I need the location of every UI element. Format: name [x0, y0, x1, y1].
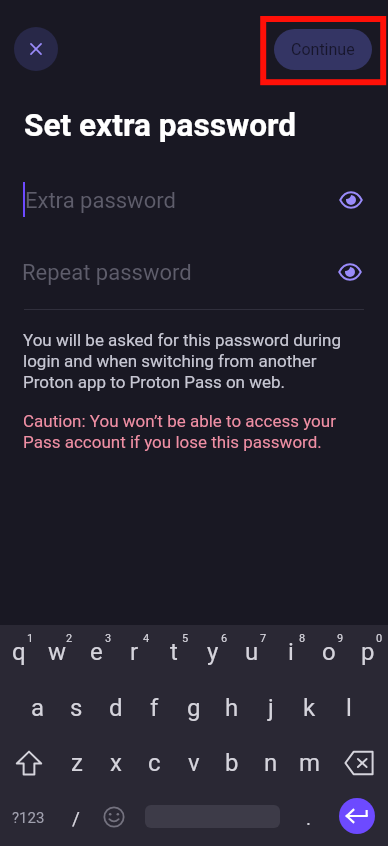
staticText: i: [288, 638, 294, 666]
staticText: 2: [66, 632, 73, 645]
staticText: k: [303, 694, 316, 722]
staticText: 7: [260, 632, 267, 645]
button[interactable]: Emoji: [95, 789, 133, 844]
staticText: l: [346, 694, 352, 722]
staticText: h: [225, 694, 239, 722]
staticText: x: [110, 749, 122, 777]
staticText: 0: [376, 632, 383, 645]
button[interactable]: s: [58, 680, 97, 735]
button[interactable]: l: [330, 680, 369, 735]
button[interactable]: Shift: [0, 735, 58, 790]
button[interactable]: b: [213, 735, 252, 790]
button[interactable]: 6: [194, 624, 233, 679]
staticText: ?123: [12, 809, 45, 827]
button[interactable]: v: [175, 735, 214, 790]
button[interactable]: Enter: [339, 798, 375, 834]
button[interactable]: 3: [78, 624, 117, 679]
button[interactable]: 7: [233, 624, 272, 679]
button[interactable]: Backspace: [330, 735, 388, 790]
staticText: n: [264, 749, 278, 777]
button[interactable]: j: [252, 680, 291, 735]
staticText: b: [225, 749, 239, 777]
button[interactable]: x: [97, 735, 136, 790]
staticText: 6: [221, 632, 228, 645]
staticText: d: [109, 694, 123, 722]
button[interactable]: 0: [349, 624, 388, 679]
button[interactable]: a: [19, 680, 58, 735]
staticText: u: [245, 638, 259, 666]
button[interactable]: g: [175, 680, 214, 735]
staticText: y: [207, 638, 219, 666]
button[interactable]: f: [136, 680, 175, 735]
button[interactable]: m: [291, 735, 330, 790]
button[interactable]: 2: [39, 624, 78, 679]
staticText: p: [361, 638, 375, 666]
staticText: Repeat password: [22, 260, 192, 286]
staticText: .: [306, 807, 312, 829]
staticText: c: [148, 749, 161, 777]
staticText: j: [268, 694, 274, 722]
staticText: /: [72, 807, 80, 829]
button[interactable]: Show password: [334, 183, 368, 217]
button[interactable]: .: [291, 790, 327, 845]
staticText: Set extra password: [24, 107, 297, 144]
button[interactable]: Extra password: [0, 176, 388, 224]
button[interactable]: 9: [310, 624, 349, 679]
button[interactable]: c: [136, 735, 175, 790]
staticText: 1: [27, 632, 34, 645]
staticText: v: [188, 749, 200, 777]
staticText: Extra password: [25, 188, 176, 214]
staticText: f: [150, 694, 159, 722]
staticText: g: [187, 694, 201, 722]
staticText: o: [322, 638, 336, 666]
staticText: You will be asked for this password duri…: [23, 330, 353, 392]
button[interactable]: 8: [272, 624, 311, 679]
staticText: Continue: [291, 40, 355, 59]
button[interactable]: 4: [116, 624, 155, 679]
button[interactable]: /: [57, 790, 95, 845]
button[interactable]: Close: [14, 27, 58, 71]
staticText: e: [90, 638, 103, 666]
button[interactable]: Show repeat password: [333, 255, 367, 289]
staticText: 4: [143, 632, 150, 645]
button[interactable]: k: [291, 680, 330, 735]
button[interactable]: d: [97, 680, 136, 735]
staticText: a: [31, 694, 45, 722]
staticText: 5: [182, 632, 189, 645]
staticText: 8: [299, 632, 306, 645]
button[interactable]: 1: [0, 624, 39, 679]
staticText: q: [12, 638, 26, 666]
button[interactable]: Continue: [274, 29, 372, 70]
button[interactable]: ?123: [0, 790, 57, 845]
staticText: r: [130, 638, 139, 666]
staticText: 3: [105, 632, 112, 645]
button[interactable]: n: [252, 735, 291, 790]
staticText: m: [299, 749, 321, 777]
staticText: Caution: You won’t be able to access you…: [23, 411, 353, 452]
button[interactable]: z: [58, 735, 97, 790]
staticText: z: [71, 749, 83, 777]
staticText: t: [170, 638, 178, 666]
staticText: w: [48, 638, 67, 666]
button[interactable]: Repeat password: [0, 248, 388, 296]
staticText: 9: [337, 632, 344, 645]
button[interactable]: h: [213, 680, 252, 735]
button[interactable]: 5: [155, 624, 194, 679]
staticText: s: [70, 694, 83, 722]
